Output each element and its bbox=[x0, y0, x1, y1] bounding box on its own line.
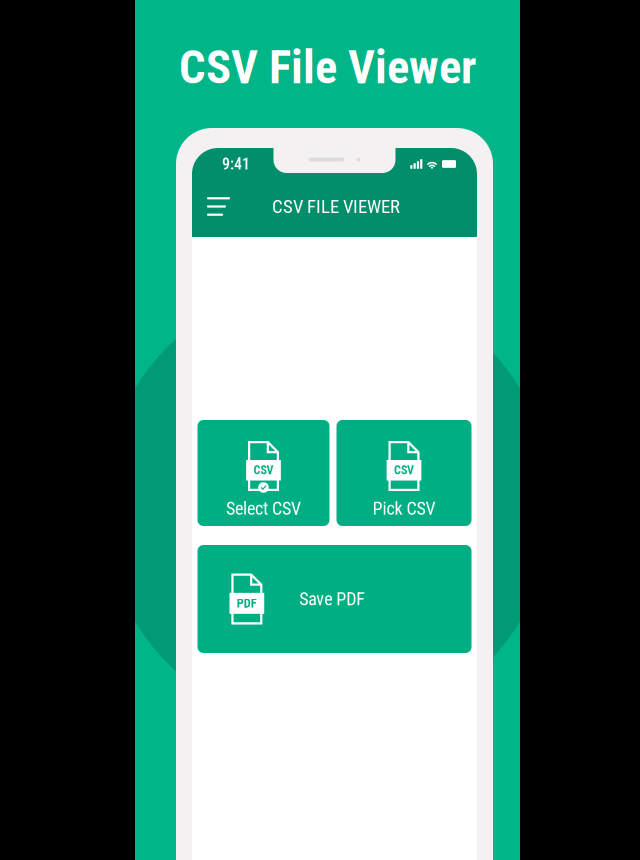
staticText: CSV File Viewer bbox=[179, 40, 476, 95]
staticText: Save PDF bbox=[299, 588, 365, 610]
staticText: CSV FILE VIEWER bbox=[272, 196, 400, 217]
button[interactable]: PDF bbox=[197, 545, 471, 653]
button[interactable]: CSV bbox=[197, 420, 329, 526]
staticText: 9:41 bbox=[222, 155, 250, 173]
staticText: PDF bbox=[237, 596, 257, 610]
staticText: Pick CSV bbox=[372, 498, 435, 519]
button[interactable]: CSV bbox=[336, 420, 471, 526]
staticText: CSV bbox=[253, 463, 273, 477]
staticText: Select CSV bbox=[226, 498, 301, 519]
staticText: CSV bbox=[394, 463, 414, 477]
button[interactable]: Menu bbox=[207, 186, 239, 226]
